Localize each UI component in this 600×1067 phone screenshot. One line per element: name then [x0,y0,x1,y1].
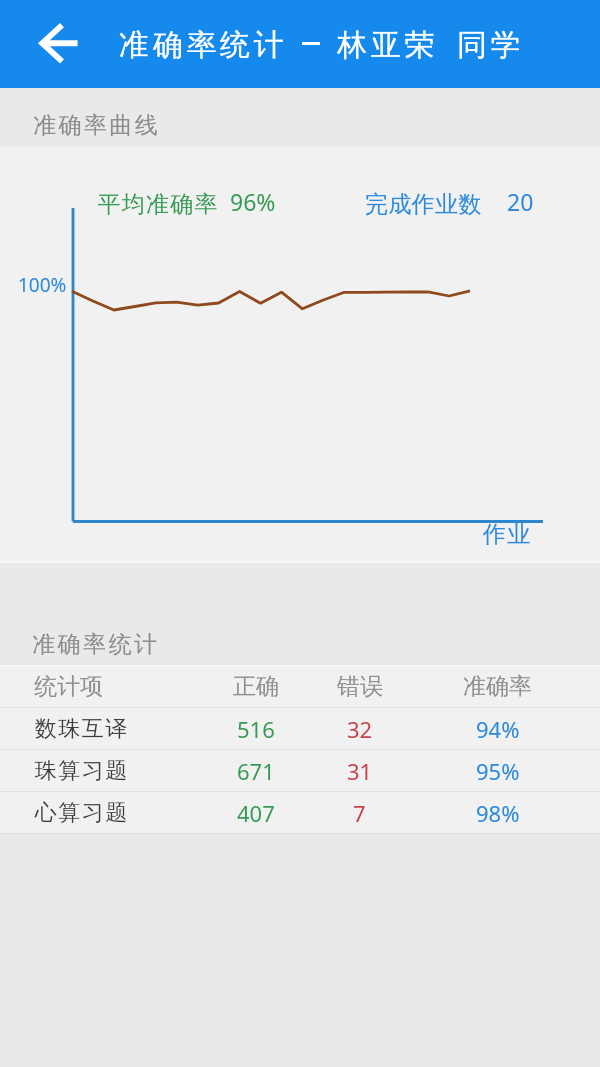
staticText: 95% [476,756,520,786]
staticText: 32 [347,714,373,744]
staticText: 平均准确率 [97,190,218,219]
staticText: 林亚荣 [337,26,439,64]
staticText: 作业 [482,520,531,549]
staticText: 94% [476,714,520,744]
staticText: 完成作业数 [365,190,482,219]
staticText: 同学 [457,26,525,64]
staticText: 数珠互译 [34,715,128,743]
staticText: 珠算习题 [34,757,128,785]
staticText: 407 [237,798,275,828]
button[interactable]: 珠算习题 [0,750,600,791]
staticText: 100% [18,272,67,298]
staticText: 心算习题 [34,799,128,827]
staticText: 98% [476,798,520,828]
staticText: 7 [353,798,366,828]
staticText: 31 [347,756,373,786]
staticText: 准确率统计 [31,630,158,659]
staticText: 671 [237,756,275,786]
staticText: 准确率曲线 [32,111,159,140]
staticText: 正确 [233,672,279,701]
button[interactable]: 心算习题 [0,792,600,833]
button[interactable]: Back [0,0,110,88]
staticText: 准确率 [463,672,532,701]
staticText: 516 [237,714,275,744]
button[interactable]: 数珠互译 [0,708,600,749]
staticText: 统计项 [34,672,103,701]
staticText: 错误 [337,672,383,701]
button[interactable]: 统计项 [0,666,600,707]
staticText: 20 [507,186,534,217]
staticText: 96% [230,186,276,217]
staticText: 准确率统计 [119,26,288,64]
